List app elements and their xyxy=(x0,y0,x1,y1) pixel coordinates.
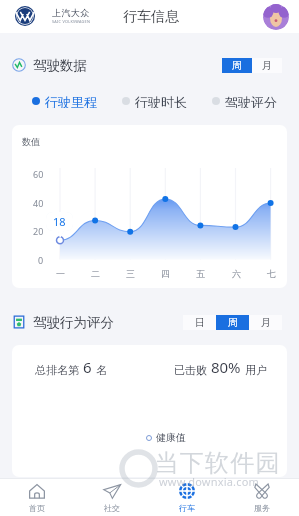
staticText: 驾驶行为评分 xyxy=(33,314,114,330)
staticText: 三 xyxy=(126,268,135,279)
staticText: 七 xyxy=(267,268,276,279)
staticText: 服务 xyxy=(254,503,270,513)
staticText: 行车 xyxy=(179,503,195,513)
button[interactable]: 周 xyxy=(222,58,252,73)
button[interactable]: 服务 xyxy=(224,479,299,516)
button[interactable]: 行车 xyxy=(149,479,224,516)
staticText: 总排名第 xyxy=(35,363,79,377)
staticText: 18 xyxy=(53,214,66,229)
staticText: 周 xyxy=(228,316,238,329)
staticText: 六 xyxy=(232,268,241,279)
button[interactable]: 月 xyxy=(249,315,282,330)
button[interactable]: 首页 xyxy=(0,479,74,516)
button[interactable]: 日 xyxy=(183,315,216,330)
staticText: 40 xyxy=(33,197,44,209)
staticText: www.downxia.com xyxy=(159,474,260,489)
staticText: 当下软件园 xyxy=(154,448,280,478)
staticText: 二 xyxy=(91,268,100,279)
staticText: 健康值 xyxy=(156,431,186,444)
staticText: 五 xyxy=(196,268,205,279)
staticText: 6 xyxy=(79,357,96,377)
staticText: 月 xyxy=(261,316,271,329)
staticText: 上汽大众 xyxy=(52,7,90,18)
button[interactable]: 行驶里程 xyxy=(32,94,97,108)
staticText: 四 xyxy=(161,268,170,279)
staticText: 数值 xyxy=(22,136,40,147)
staticText: 80% xyxy=(207,357,245,377)
staticText: 行车信息 xyxy=(123,8,179,26)
staticText: 行驶里程 xyxy=(45,94,97,108)
staticText: 60 xyxy=(33,168,44,180)
staticText: 驾驶评分 xyxy=(225,94,277,108)
staticText: 名 xyxy=(96,363,107,377)
staticText: 已击败 xyxy=(174,363,207,377)
staticText: 20 xyxy=(33,225,44,237)
staticText: 0 xyxy=(38,254,44,266)
button[interactable]: 周 xyxy=(216,315,249,330)
staticText: 行驶时长 xyxy=(135,94,187,108)
button[interactable]: 社交 xyxy=(74,479,149,516)
staticText: 驾驶数据 xyxy=(33,57,87,73)
staticText: 一 xyxy=(56,268,65,279)
staticText: 周 xyxy=(232,59,242,72)
staticText: 月 xyxy=(262,59,272,72)
button[interactable]: 月 xyxy=(252,58,282,73)
button[interactable]: 驾驶评分 xyxy=(212,94,277,108)
button[interactable]: 行驶时长 xyxy=(122,94,187,108)
staticText: 社交 xyxy=(104,503,120,513)
button[interactable]: Profile xyxy=(263,4,289,30)
staticText: SAIC VOLKSWAGEN xyxy=(52,19,91,24)
staticText: 用户 xyxy=(245,363,267,377)
staticText: 首页 xyxy=(29,503,45,513)
staticText: 日 xyxy=(195,316,205,329)
